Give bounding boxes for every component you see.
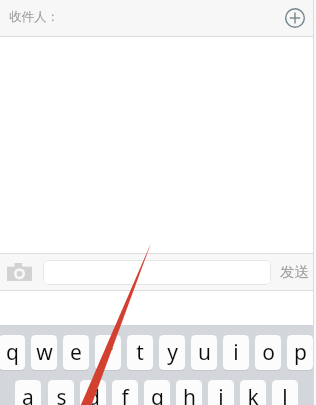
button[interactable]	[43, 260, 271, 285]
button[interactable]: h	[176, 380, 202, 405]
button[interactable]: w	[31, 335, 57, 370]
staticText: r	[104, 338, 113, 367]
button[interactable]: u	[191, 335, 217, 370]
button[interactable]: t	[127, 335, 153, 370]
staticText: y	[167, 338, 178, 367]
staticText: o	[262, 338, 275, 367]
button[interactable]: d	[80, 380, 106, 405]
staticText: 发送	[280, 263, 309, 281]
button[interactable]: l	[272, 380, 298, 405]
staticText: s	[56, 383, 67, 405]
button[interactable]: f	[112, 380, 138, 405]
staticText: h	[183, 383, 196, 405]
staticText: a	[22, 383, 34, 405]
button[interactable]: a	[15, 380, 41, 405]
button[interactable]: e	[63, 335, 89, 370]
staticText: u	[198, 338, 211, 367]
button[interactable]: p	[287, 335, 313, 370]
button[interactable]: q	[0, 335, 25, 370]
staticText: d	[87, 383, 100, 405]
staticText: k	[247, 383, 259, 405]
button[interactable]: Camera	[7, 263, 32, 281]
button[interactable]: s	[48, 380, 74, 405]
staticText: g	[151, 383, 164, 405]
button[interactable]: r	[95, 335, 121, 370]
button[interactable]: k	[240, 380, 266, 405]
button[interactable]: Add recipient	[284, 7, 306, 29]
staticText: j	[218, 383, 224, 405]
staticText: q	[6, 338, 19, 367]
staticText: e	[70, 338, 82, 367]
button[interactable]: y	[159, 335, 185, 370]
staticText: l	[282, 383, 288, 405]
staticText: 收件人：	[9, 9, 59, 25]
staticText: p	[294, 338, 307, 367]
staticText: f	[121, 383, 129, 405]
staticText: i	[233, 338, 239, 367]
button[interactable]: o	[255, 335, 281, 370]
staticText: t	[136, 338, 144, 367]
button[interactable]: j	[208, 380, 234, 405]
button[interactable]: i	[223, 335, 249, 370]
button[interactable]: 发送	[280, 263, 309, 281]
staticText: w	[36, 338, 53, 367]
button[interactable]: g	[144, 380, 170, 405]
